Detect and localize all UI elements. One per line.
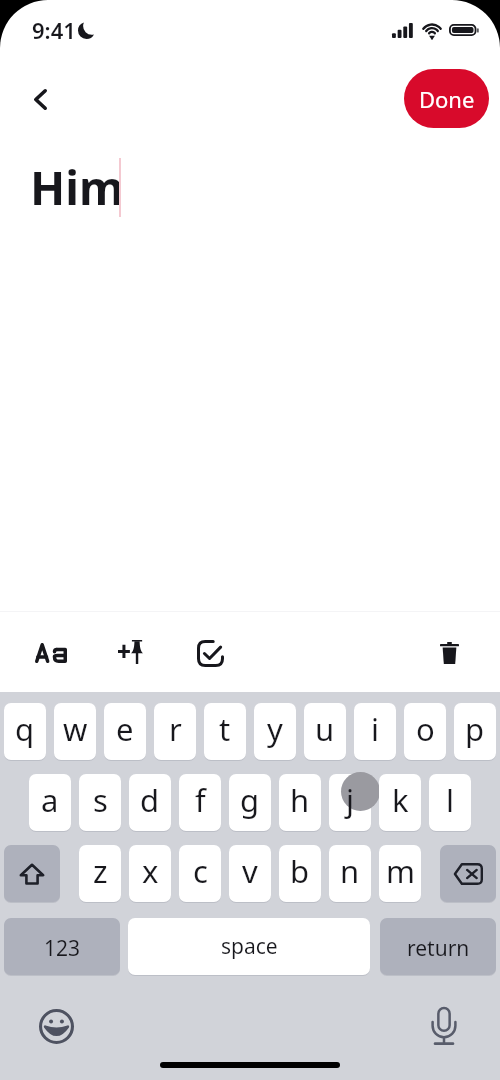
- staticText: r: [169, 708, 182, 750]
- staticText: o: [416, 708, 435, 750]
- button[interactable]: v: [229, 845, 271, 902]
- staticText: 9:41: [32, 15, 76, 45]
- button[interactable]: m: [379, 845, 421, 902]
- staticText: f: [195, 779, 206, 821]
- button[interactable]: 123: [4, 918, 120, 975]
- button[interactable]: k: [379, 774, 421, 831]
- staticText: g: [240, 779, 260, 821]
- button[interactable]: Backspace: [440, 845, 496, 902]
- button[interactable]: c: [179, 845, 221, 902]
- staticText: p: [465, 708, 485, 750]
- button[interactable]: j: [329, 774, 371, 831]
- button[interactable]: Done: [404, 69, 489, 128]
- staticText: space: [221, 932, 278, 961]
- staticText: y: [267, 708, 283, 750]
- staticText: x: [142, 850, 159, 892]
- staticText: i: [371, 708, 379, 750]
- button[interactable]: o: [404, 703, 446, 760]
- button[interactable]: s: [79, 774, 121, 831]
- staticText: e: [116, 708, 134, 750]
- button[interactable]: Emoji keyboard: [32, 1002, 80, 1050]
- button[interactable]: Back: [17, 76, 63, 122]
- staticText: b: [290, 850, 310, 892]
- staticText: return: [407, 934, 470, 963]
- button[interactable]: p: [454, 703, 496, 760]
- button[interactable]: d: [129, 774, 171, 831]
- button[interactable]: y: [254, 703, 296, 760]
- button[interactable]: h: [279, 774, 321, 831]
- button[interactable]: x: [129, 845, 171, 902]
- staticText: w: [63, 708, 88, 750]
- button[interactable]: w: [54, 703, 96, 760]
- staticText: k: [392, 779, 409, 821]
- button[interactable]: Add pin: [107, 628, 155, 676]
- button[interactable]: return: [380, 918, 496, 975]
- staticText: 123: [44, 934, 81, 963]
- button[interactable]: i: [354, 703, 396, 760]
- staticText: Him: [30, 156, 124, 219]
- button[interactable]: a: [29, 774, 71, 831]
- staticText: n: [340, 850, 360, 892]
- staticText: h: [290, 779, 310, 821]
- button[interactable]: r: [154, 703, 196, 760]
- button[interactable]: Dictation: [420, 1002, 468, 1050]
- button[interactable]: Delete note: [425, 629, 473, 677]
- button[interactable]: Shift: [4, 845, 60, 902]
- button[interactable]: e: [104, 703, 146, 760]
- button[interactable]: q: [4, 703, 46, 760]
- button[interactable]: l: [429, 774, 471, 831]
- staticText: a: [41, 779, 59, 821]
- staticText: v: [242, 850, 258, 892]
- staticText: l: [446, 779, 454, 821]
- staticText: t: [219, 708, 231, 750]
- staticText: z: [93, 850, 108, 892]
- button[interactable]: Text format: [27, 629, 75, 677]
- button[interactable]: u: [304, 703, 346, 760]
- staticText: j: [346, 779, 354, 821]
- staticText: q: [15, 708, 35, 750]
- staticText: d: [140, 779, 160, 821]
- button[interactable]: f: [179, 774, 221, 831]
- button[interactable]: t: [204, 703, 246, 760]
- button[interactable]: [329, 774, 371, 831]
- button[interactable]: g: [229, 774, 271, 831]
- button[interactable]: n: [329, 845, 371, 902]
- button[interactable]: b: [279, 845, 321, 902]
- button[interactable]: space: [128, 918, 370, 975]
- staticText: c: [193, 850, 208, 892]
- button[interactable]: Checklist: [186, 629, 234, 677]
- staticText: m: [386, 850, 415, 892]
- staticText: Done: [419, 84, 475, 114]
- button[interactable]: z: [79, 845, 121, 902]
- staticText: u: [315, 708, 335, 750]
- staticText: s: [93, 779, 108, 821]
